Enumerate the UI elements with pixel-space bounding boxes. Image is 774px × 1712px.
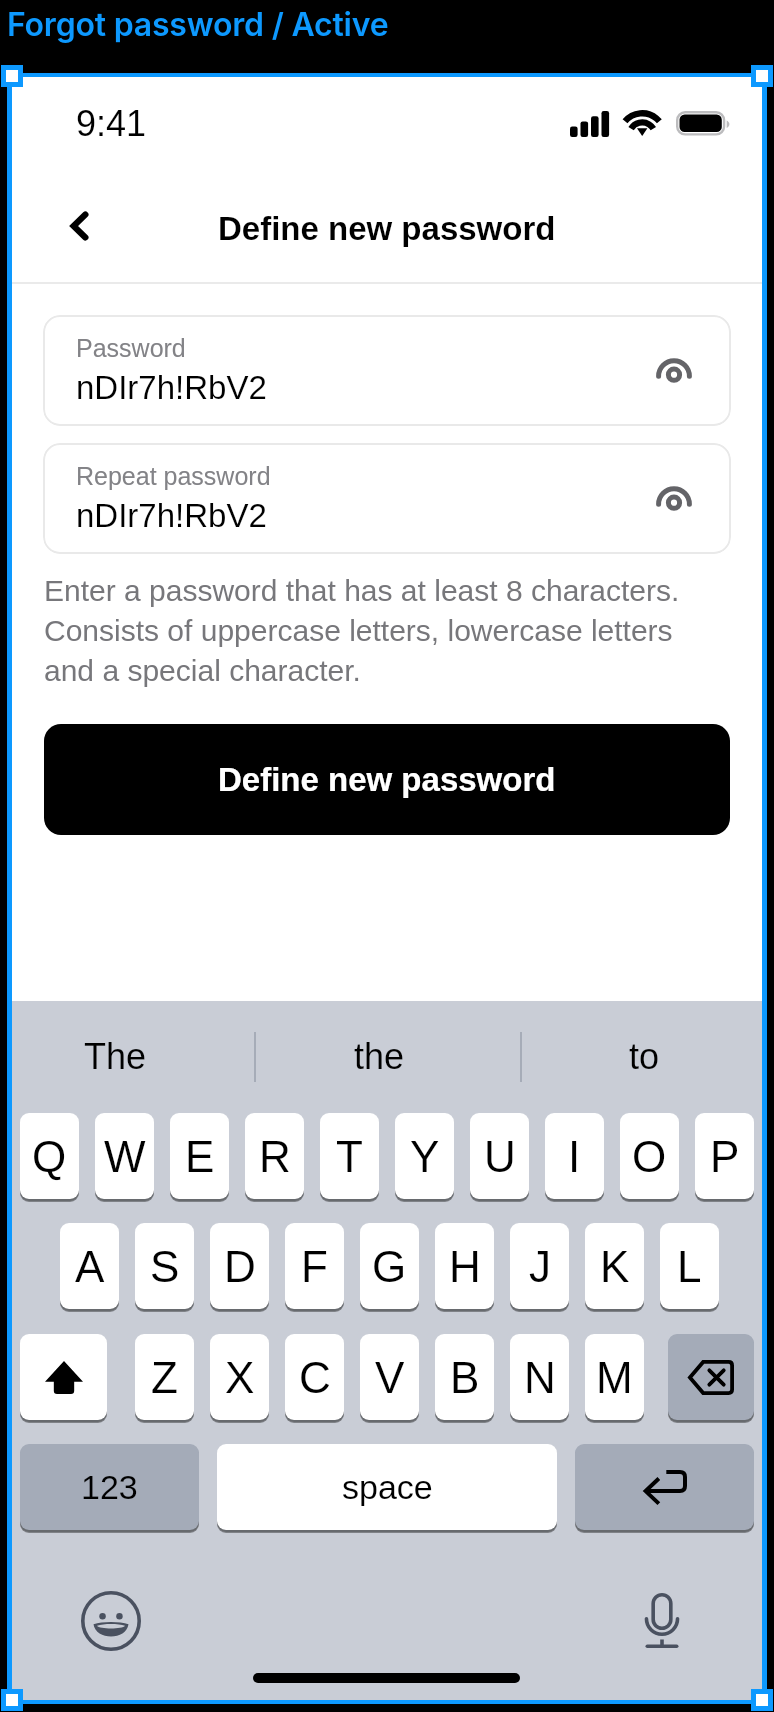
button[interactable]: I xyxy=(545,1113,604,1199)
staticText: to xyxy=(629,1036,660,1076)
staticText: R xyxy=(259,1132,291,1181)
staticText: B xyxy=(450,1353,480,1402)
staticText: E xyxy=(185,1132,215,1181)
staticText: Password xyxy=(76,334,186,362)
button[interactable]: M xyxy=(585,1334,644,1420)
staticText: I xyxy=(568,1132,581,1181)
button[interactable]: 123 xyxy=(20,1444,199,1530)
button[interactable]: Voice input xyxy=(630,1589,694,1653)
button[interactable]: O xyxy=(620,1113,679,1199)
button[interactable]: Q xyxy=(20,1113,79,1199)
button[interactable]: Z xyxy=(135,1334,194,1420)
staticText: Repeat password xyxy=(76,462,271,490)
staticText: Define new password xyxy=(218,761,556,798)
staticText: F xyxy=(301,1242,328,1291)
staticText: V xyxy=(375,1353,405,1402)
staticText: J xyxy=(529,1242,551,1291)
button[interactable]: U xyxy=(470,1113,529,1199)
staticText: H xyxy=(449,1242,481,1291)
button[interactable]: F xyxy=(285,1223,344,1309)
button[interactable]: N xyxy=(510,1334,569,1420)
staticText: O xyxy=(632,1132,667,1181)
staticText: The xyxy=(84,1036,147,1076)
button[interactable]: W xyxy=(95,1113,154,1199)
button[interactable]: the xyxy=(246,1001,512,1110)
button[interactable]: K xyxy=(585,1223,644,1309)
button[interactable]: A xyxy=(60,1223,119,1309)
button[interactable]: Show password xyxy=(648,347,700,399)
button[interactable]: Backspace xyxy=(668,1334,754,1420)
button[interactable]: Back xyxy=(48,195,110,257)
button[interactable]: B xyxy=(435,1334,494,1420)
button[interactable]: E xyxy=(170,1113,229,1199)
button[interactable]: Show password xyxy=(648,475,700,527)
staticText: Z xyxy=(151,1353,178,1402)
staticText: Forgot password / Active xyxy=(7,5,389,44)
button[interactable]: V xyxy=(360,1334,419,1420)
staticText: space xyxy=(342,1468,433,1506)
button[interactable]: L xyxy=(660,1223,719,1309)
staticText: Define new password xyxy=(218,210,556,247)
staticText: N xyxy=(524,1353,556,1402)
button[interactable]: R xyxy=(245,1113,304,1199)
staticText: A xyxy=(75,1242,105,1291)
button[interactable]: Define new password xyxy=(44,724,730,835)
staticText: G xyxy=(372,1242,407,1291)
button[interactable]: J xyxy=(510,1223,569,1309)
staticText: P xyxy=(710,1132,740,1181)
staticText: X xyxy=(225,1353,255,1402)
staticText: the xyxy=(354,1036,405,1076)
staticText: U xyxy=(484,1132,516,1181)
button[interactable]: Enter xyxy=(575,1444,754,1530)
button[interactable]: space xyxy=(217,1444,557,1530)
button[interactable]: D xyxy=(210,1223,269,1309)
button[interactable]: to xyxy=(523,1001,765,1110)
button[interactable]: Shift xyxy=(20,1334,107,1420)
staticText: nDIr7h!RbV2 xyxy=(76,497,267,534)
staticText: nDIr7h!RbV2 xyxy=(76,369,267,406)
button[interactable]: X xyxy=(210,1334,269,1420)
staticText: L xyxy=(677,1242,702,1291)
button[interactable]: T xyxy=(320,1113,379,1199)
button[interactable]: H xyxy=(435,1223,494,1309)
staticText: D xyxy=(224,1242,256,1291)
button[interactable]: P xyxy=(695,1113,754,1199)
staticText: K xyxy=(600,1242,630,1291)
staticText: T xyxy=(336,1132,363,1181)
button[interactable]: Password xyxy=(43,315,731,426)
staticText: Y xyxy=(410,1132,440,1181)
staticText: Q xyxy=(32,1132,67,1181)
button[interactable]: Emoji xyxy=(79,1589,143,1653)
button[interactable]: G xyxy=(360,1223,419,1309)
staticText: W xyxy=(104,1132,146,1181)
button[interactable]: Y xyxy=(395,1113,454,1199)
staticText: S xyxy=(150,1242,180,1291)
button[interactable]: C xyxy=(285,1334,344,1420)
staticText: M xyxy=(596,1353,633,1402)
staticText: C xyxy=(299,1353,331,1402)
staticText: 123 xyxy=(81,1468,138,1506)
staticText: Enter a password that has at least 8 cha… xyxy=(44,574,680,687)
staticText: 9:41 xyxy=(76,103,147,143)
button[interactable]: Repeat password xyxy=(43,443,731,554)
button[interactable]: The xyxy=(0,1001,236,1110)
button[interactable]: S xyxy=(135,1223,194,1309)
